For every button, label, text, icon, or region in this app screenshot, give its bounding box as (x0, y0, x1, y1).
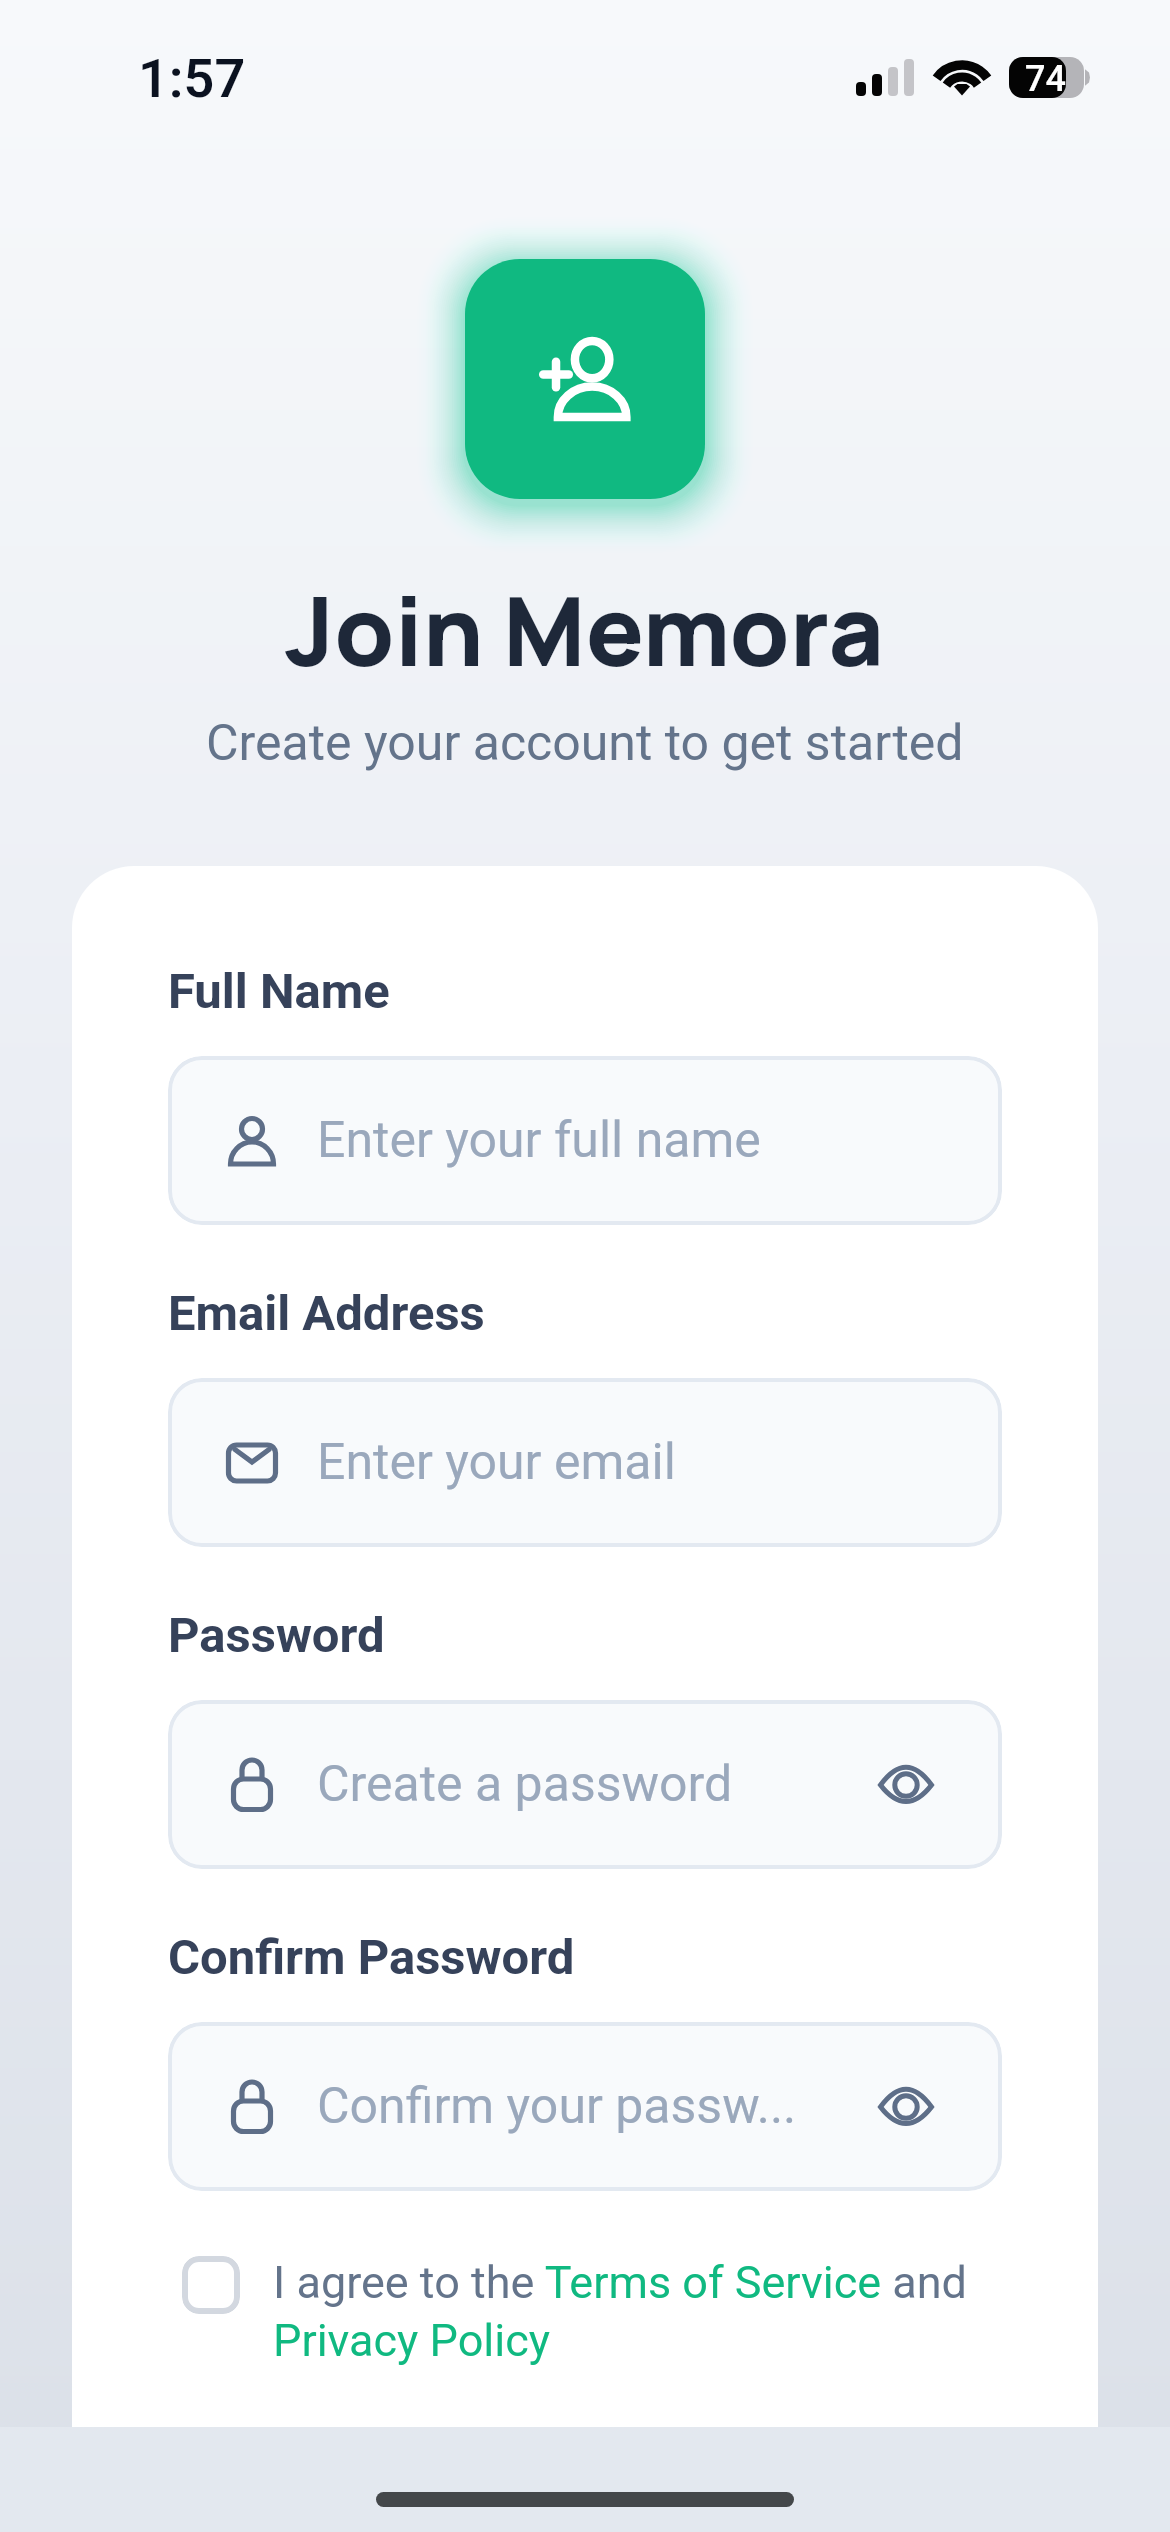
button[interactable]: Confirm your passw... (168, 2022, 1002, 2191)
staticText: Create your account to get started (206, 714, 964, 773)
button[interactable]: Create a password (168, 1700, 1002, 1869)
button[interactable]: Show password (871, 2072, 941, 2142)
staticText: 74 (1025, 58, 1066, 100)
staticText: Email Address (168, 1285, 485, 1342)
staticText: 1:57 (138, 47, 246, 110)
staticText: Enter your full name (317, 1111, 761, 1170)
staticText: Full Name (168, 963, 390, 1020)
staticText: Password (168, 1607, 385, 1664)
staticText: Join Memora (285, 564, 885, 695)
staticText: Confirm your passw... (317, 2077, 797, 2136)
button[interactable]: Enter your email (168, 1378, 1002, 1547)
button[interactable]: I agree to the Terms of Service and Priv… (168, 2256, 1002, 2367)
staticText: Enter your email (317, 1433, 676, 1492)
button[interactable]: Show password (871, 1750, 941, 1820)
button[interactable]: Enter your full name (168, 1056, 1002, 1225)
button[interactable]: Memora logo (465, 259, 705, 499)
staticText: I agree to the Terms of Service and Priv… (273, 2256, 1002, 2367)
staticText: Create a password (317, 1755, 733, 1814)
staticText: Confirm Password (168, 1929, 575, 1986)
